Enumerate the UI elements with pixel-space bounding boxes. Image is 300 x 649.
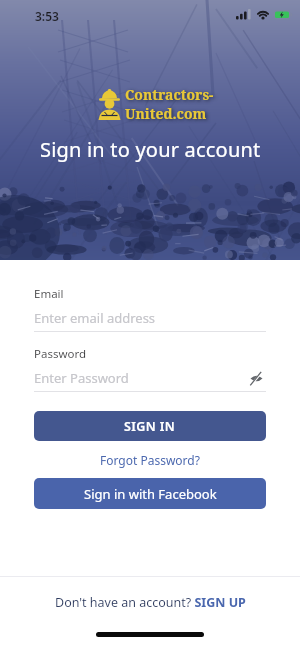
staticText: Sign in to your account xyxy=(40,136,261,163)
button[interactable]: Forgot Password? xyxy=(100,452,200,468)
staticText: Don't have an account? SIGN UP xyxy=(55,594,246,611)
button[interactable]: SIGN IN xyxy=(34,411,266,441)
staticText: 3:53 xyxy=(35,8,59,24)
staticText: Sign in with Facebook xyxy=(84,485,217,503)
staticText: SIGN IN xyxy=(124,418,176,435)
button[interactable] xyxy=(250,373,263,384)
staticText: Password xyxy=(34,346,87,362)
button[interactable]: Don't have an account? SIGN UP xyxy=(0,594,300,611)
button[interactable]: Enter email address xyxy=(34,309,266,327)
staticText: United.com xyxy=(125,104,207,123)
staticText: Email xyxy=(34,286,64,302)
button[interactable]: Enter Password xyxy=(34,369,250,387)
button[interactable]: Sign in with Facebook xyxy=(34,478,266,509)
staticText: Contractors- xyxy=(125,85,214,104)
